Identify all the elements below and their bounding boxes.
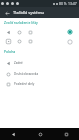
button[interactable]: Druhá obrazovka [0,69,79,79]
button[interactable] [0,37,79,46]
button[interactable]: Home [27,128,53,140]
staticText: Zadné [14,61,23,65]
button[interactable] [0,27,79,37]
button[interactable]: Posledné diely [0,79,79,89]
staticText: 80 % [59,1,67,6]
button[interactable]: Recent apps [53,128,79,140]
staticText: Posledné diely [14,82,35,86]
staticText: Druhá obrazovka [14,72,39,76]
staticText: 13:47 [68,1,77,6]
button[interactable]: Navigate up [2,8,12,18]
staticText: Zvoliť rozloženie lišty [4,20,38,25]
staticText: Poloha [4,49,16,54]
button[interactable]: Back [0,128,27,140]
button[interactable]: Zadné [0,57,79,69]
staticText: Tlačidlá systému [13,10,45,15]
